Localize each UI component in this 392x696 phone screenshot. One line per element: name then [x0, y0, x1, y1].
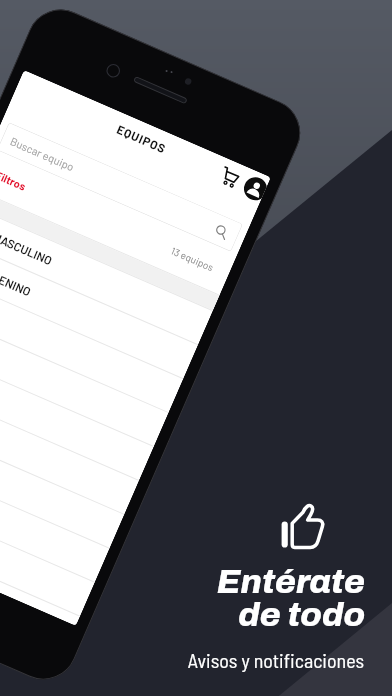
- staticText: Entérate de todo: [0, 563, 365, 634]
- button[interactable]: FEMENINO: [0, 238, 198, 378]
- staticText: EQUIPOS: [115, 122, 169, 156]
- staticText: FEMENINO: [0, 263, 34, 299]
- staticText: 13 equipos: [169, 244, 216, 274]
- staticText: Buscar equipo: [8, 134, 77, 174]
- staticText: Avisos y notificaciones: [0, 648, 364, 672]
- button[interactable]: Buscar equipo: [0, 122, 243, 252]
- button[interactable]: MASCULINO: [0, 204, 212, 344]
- other: Me gusta: [280, 502, 326, 550]
- button[interactable]: Filtros: [0, 155, 234, 286]
- staticText: Filtros: [0, 168, 28, 193]
- staticText: MASCULINO: [0, 229, 55, 268]
- button[interactable]: Perfil: [237, 170, 270, 205]
- button[interactable]: Carrito: [211, 158, 248, 195]
